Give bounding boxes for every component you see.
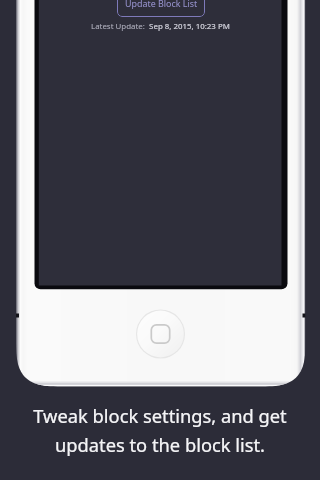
button[interactable]: Home <box>136 310 184 358</box>
button[interactable]: Update Block List <box>117 0 205 17</box>
staticText: Update Block List <box>125 0 198 9</box>
staticText: Latest Update: <box>91 21 145 32</box>
staticText: Sep 8, 2015, 10:23 PM <box>145 21 230 32</box>
staticText: Tweak block settings, and get updates to… <box>33 403 287 457</box>
